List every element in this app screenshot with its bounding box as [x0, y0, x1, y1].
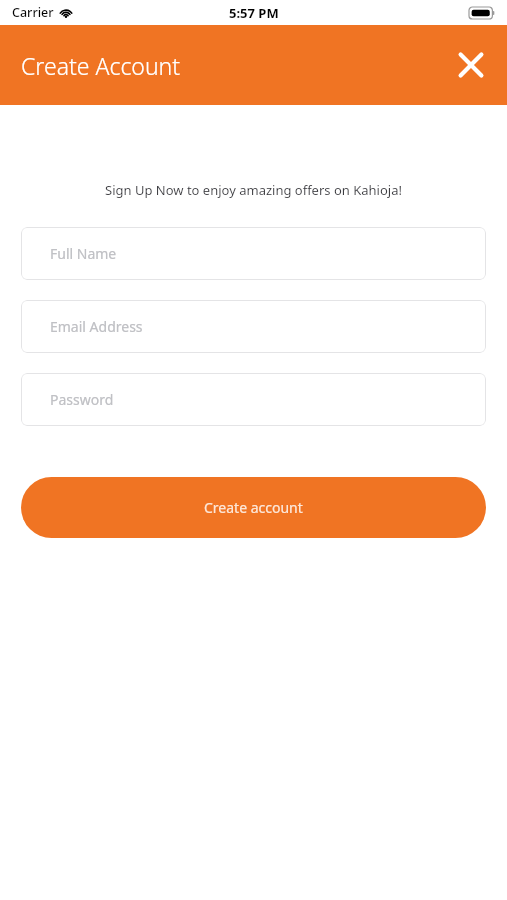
staticText: Create account	[204, 498, 303, 517]
button[interactable]: Full Name	[21, 227, 486, 280]
staticText: Create Account	[21, 50, 181, 81]
staticText: 5:57 PM	[229, 4, 279, 22]
staticText: Sign Up Now to enjoy amazing offers on K…	[0, 181, 507, 199]
staticText: Carrier	[12, 4, 54, 21]
staticText: Full Name	[50, 244, 117, 263]
button[interactable]: Create account	[21, 477, 486, 538]
button[interactable]: Password	[21, 373, 486, 426]
button[interactable]: Close	[447, 41, 495, 89]
staticText: Password	[50, 390, 114, 409]
staticText: Email Address	[50, 317, 143, 336]
button[interactable]: Email Address	[21, 300, 486, 353]
